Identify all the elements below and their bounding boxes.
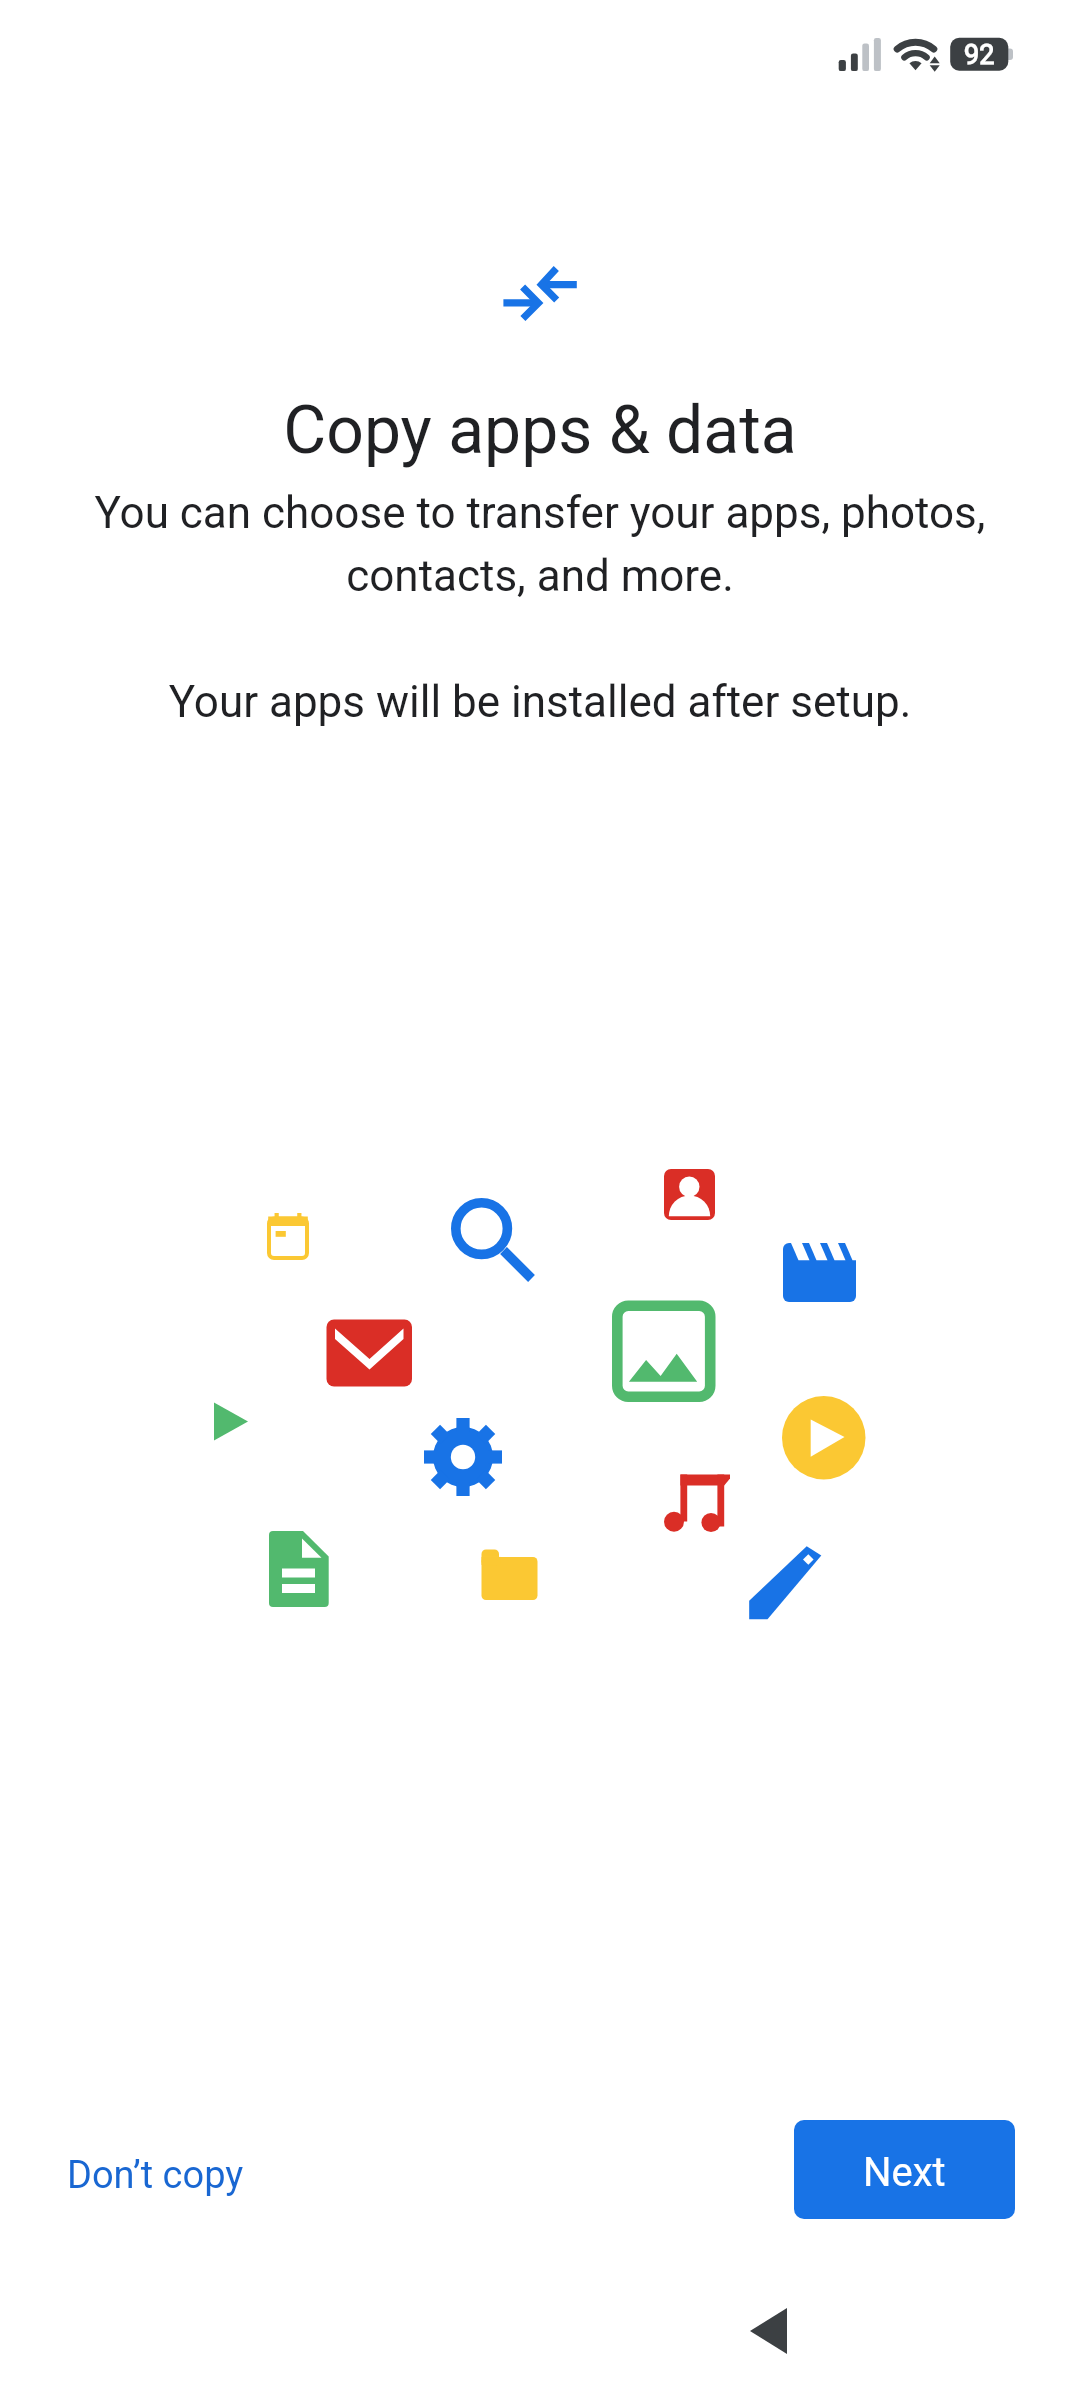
button[interactable]: Next [794, 2120, 1015, 2219]
staticText: You can choose to transfer your apps, ph… [0, 487, 1080, 728]
staticText: Next [863, 2149, 946, 2196]
button[interactable]: Back [734, 2291, 814, 2371]
staticText: Copy apps & data [0, 392, 1080, 469]
staticText: Don’t copy [67, 2153, 244, 2198]
button[interactable]: Don’t copy [43, 2131, 268, 2220]
staticText: 92 [964, 39, 995, 71]
